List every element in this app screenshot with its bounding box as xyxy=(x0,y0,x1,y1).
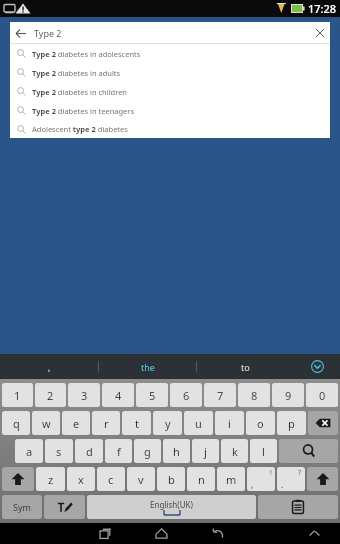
staticText: . xyxy=(281,478,284,490)
button[interactable]: a xyxy=(15,439,43,463)
button[interactable]: Back xyxy=(10,23,30,43)
staticText: Type 2 diabetes in adults xyxy=(32,68,121,78)
staticText: 5 xyxy=(149,388,156,403)
button[interactable]: x xyxy=(67,467,95,491)
button[interactable]: z xyxy=(36,467,65,491)
staticText: f xyxy=(117,444,121,459)
staticText: a xyxy=(26,444,33,459)
button[interactable]: j xyxy=(192,439,219,463)
button[interactable]: g xyxy=(134,439,161,463)
button[interactable]: l xyxy=(250,439,277,463)
button[interactable]: 6 xyxy=(170,383,202,407)
button[interactable]: e xyxy=(62,411,90,435)
button[interactable]: Back xyxy=(200,523,234,544)
button[interactable]: Type 2 diabetes in children xyxy=(10,82,330,101)
button[interactable]: 7 xyxy=(204,383,236,407)
staticText: x xyxy=(78,472,84,487)
button[interactable]: t xyxy=(122,411,151,435)
staticText: 8 xyxy=(251,388,258,403)
staticText: Type 2 diabetes in teenagers xyxy=(32,106,135,116)
button[interactable]: h xyxy=(163,439,190,463)
staticText: u xyxy=(195,416,202,431)
button[interactable]: q xyxy=(2,411,30,435)
button[interactable]: Adolescent type 2 diabetes xyxy=(10,120,330,138)
button[interactable]: to xyxy=(197,354,294,379)
staticText: English(UK) xyxy=(150,499,193,510)
staticText: z xyxy=(48,472,54,487)
button[interactable]: p xyxy=(277,411,306,435)
staticText: q xyxy=(13,416,20,431)
button[interactable]: r xyxy=(92,411,120,435)
button[interactable]: Type 2 diabetes in adolescents xyxy=(10,44,330,63)
button[interactable]: Sym xyxy=(2,495,42,519)
staticText: 4 xyxy=(115,388,122,403)
button[interactable]: Handwriting xyxy=(44,495,85,519)
staticText: Type 2 diabetes in children xyxy=(32,87,127,97)
button[interactable]: the xyxy=(99,354,196,379)
staticText: t xyxy=(135,416,139,431)
staticText: Sym xyxy=(13,501,31,513)
button[interactable]: k xyxy=(221,439,248,463)
staticText: p xyxy=(288,416,295,431)
button[interactable]: u xyxy=(184,411,213,435)
staticText: l xyxy=(262,444,265,459)
button[interactable]: 0 xyxy=(306,383,338,407)
button[interactable]: 2 xyxy=(35,383,66,407)
button[interactable]: ! xyxy=(247,467,275,491)
staticText: Adolescent type 2 diabetes xyxy=(32,124,128,134)
staticText: i xyxy=(228,416,231,431)
button[interactable]: Home xyxy=(144,523,178,544)
staticText: 6 xyxy=(183,388,190,403)
button[interactable]: n xyxy=(187,467,215,491)
button[interactable]: Clear xyxy=(310,23,330,43)
button[interactable]: 1 xyxy=(2,383,33,407)
staticText: , xyxy=(48,361,51,373)
staticText: k xyxy=(232,444,238,459)
button[interactable]: 8 xyxy=(238,383,270,407)
button[interactable]: Type 2 diabetes in teenagers xyxy=(10,101,330,120)
staticText: 1 xyxy=(14,388,21,403)
button[interactable]: s xyxy=(45,439,73,463)
staticText: 17:28 xyxy=(308,1,337,16)
button[interactable]: , xyxy=(0,354,98,379)
button[interactable]: Recents xyxy=(88,523,122,544)
button[interactable]: Expand suggestions xyxy=(294,354,340,379)
staticText: v xyxy=(138,472,144,487)
staticText: j xyxy=(204,444,207,459)
button[interactable]: ? xyxy=(277,467,305,491)
button[interactable]: Type 2 diabetes in adults xyxy=(10,63,330,82)
button[interactable]: m xyxy=(217,467,245,491)
button[interactable]: d xyxy=(75,439,103,463)
staticText: 3 xyxy=(81,388,88,403)
button[interactable]: Search xyxy=(279,439,338,463)
staticText: Type 2 xyxy=(34,27,310,39)
button[interactable]: 5 xyxy=(136,383,168,407)
button[interactable]: More xyxy=(297,523,331,544)
staticText: d xyxy=(86,444,93,459)
staticText: o xyxy=(257,416,264,431)
button[interactable]: i xyxy=(215,411,244,435)
staticText: 9 xyxy=(285,388,292,403)
button[interactable]: Shift xyxy=(2,467,34,491)
staticText: 0 xyxy=(319,388,326,403)
button[interactable]: c xyxy=(97,467,125,491)
button[interactable]: Shift xyxy=(307,467,338,491)
staticText: m xyxy=(226,472,237,487)
button[interactable]: b xyxy=(157,467,185,491)
staticText: 2 xyxy=(47,388,54,403)
button[interactable]: o xyxy=(246,411,275,435)
button[interactable]: 3 xyxy=(68,383,100,407)
staticText: s xyxy=(56,444,62,459)
button[interactable]: 9 xyxy=(272,383,304,407)
button[interactable]: Clipboard xyxy=(258,495,338,519)
button[interactable]: f xyxy=(105,439,132,463)
button[interactable]: w xyxy=(32,411,60,435)
button[interactable]: English(UK) xyxy=(87,495,256,519)
staticText: to xyxy=(241,361,250,373)
button[interactable]: y xyxy=(153,411,182,435)
button[interactable]: 4 xyxy=(102,383,134,407)
button[interactable]: Backspace xyxy=(308,411,338,435)
staticText: b xyxy=(168,472,175,487)
staticText: ! xyxy=(270,468,272,478)
button[interactable]: v xyxy=(127,467,155,491)
